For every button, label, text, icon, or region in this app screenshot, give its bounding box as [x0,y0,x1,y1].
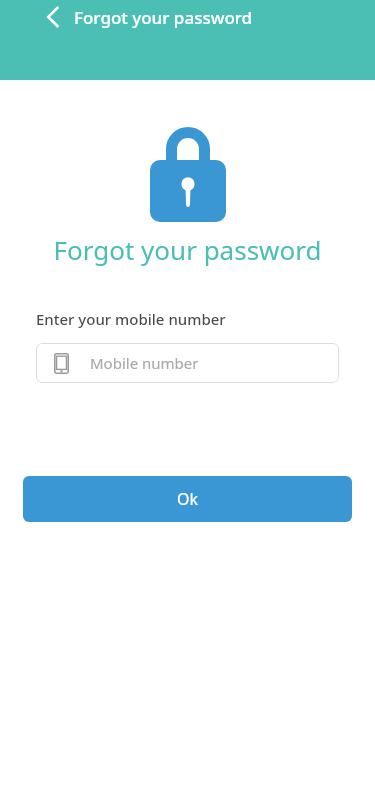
staticText: Mobile number [90,353,199,373]
button[interactable]: Mobile number [36,343,339,383]
staticText: Ok [177,488,199,510]
staticText: Enter your mobile number [36,309,226,329]
button[interactable]: Back [36,0,70,34]
staticText: Forgot your password [0,232,375,267]
button[interactable]: Ok [23,476,352,522]
staticText: Forgot your password [74,6,253,29]
